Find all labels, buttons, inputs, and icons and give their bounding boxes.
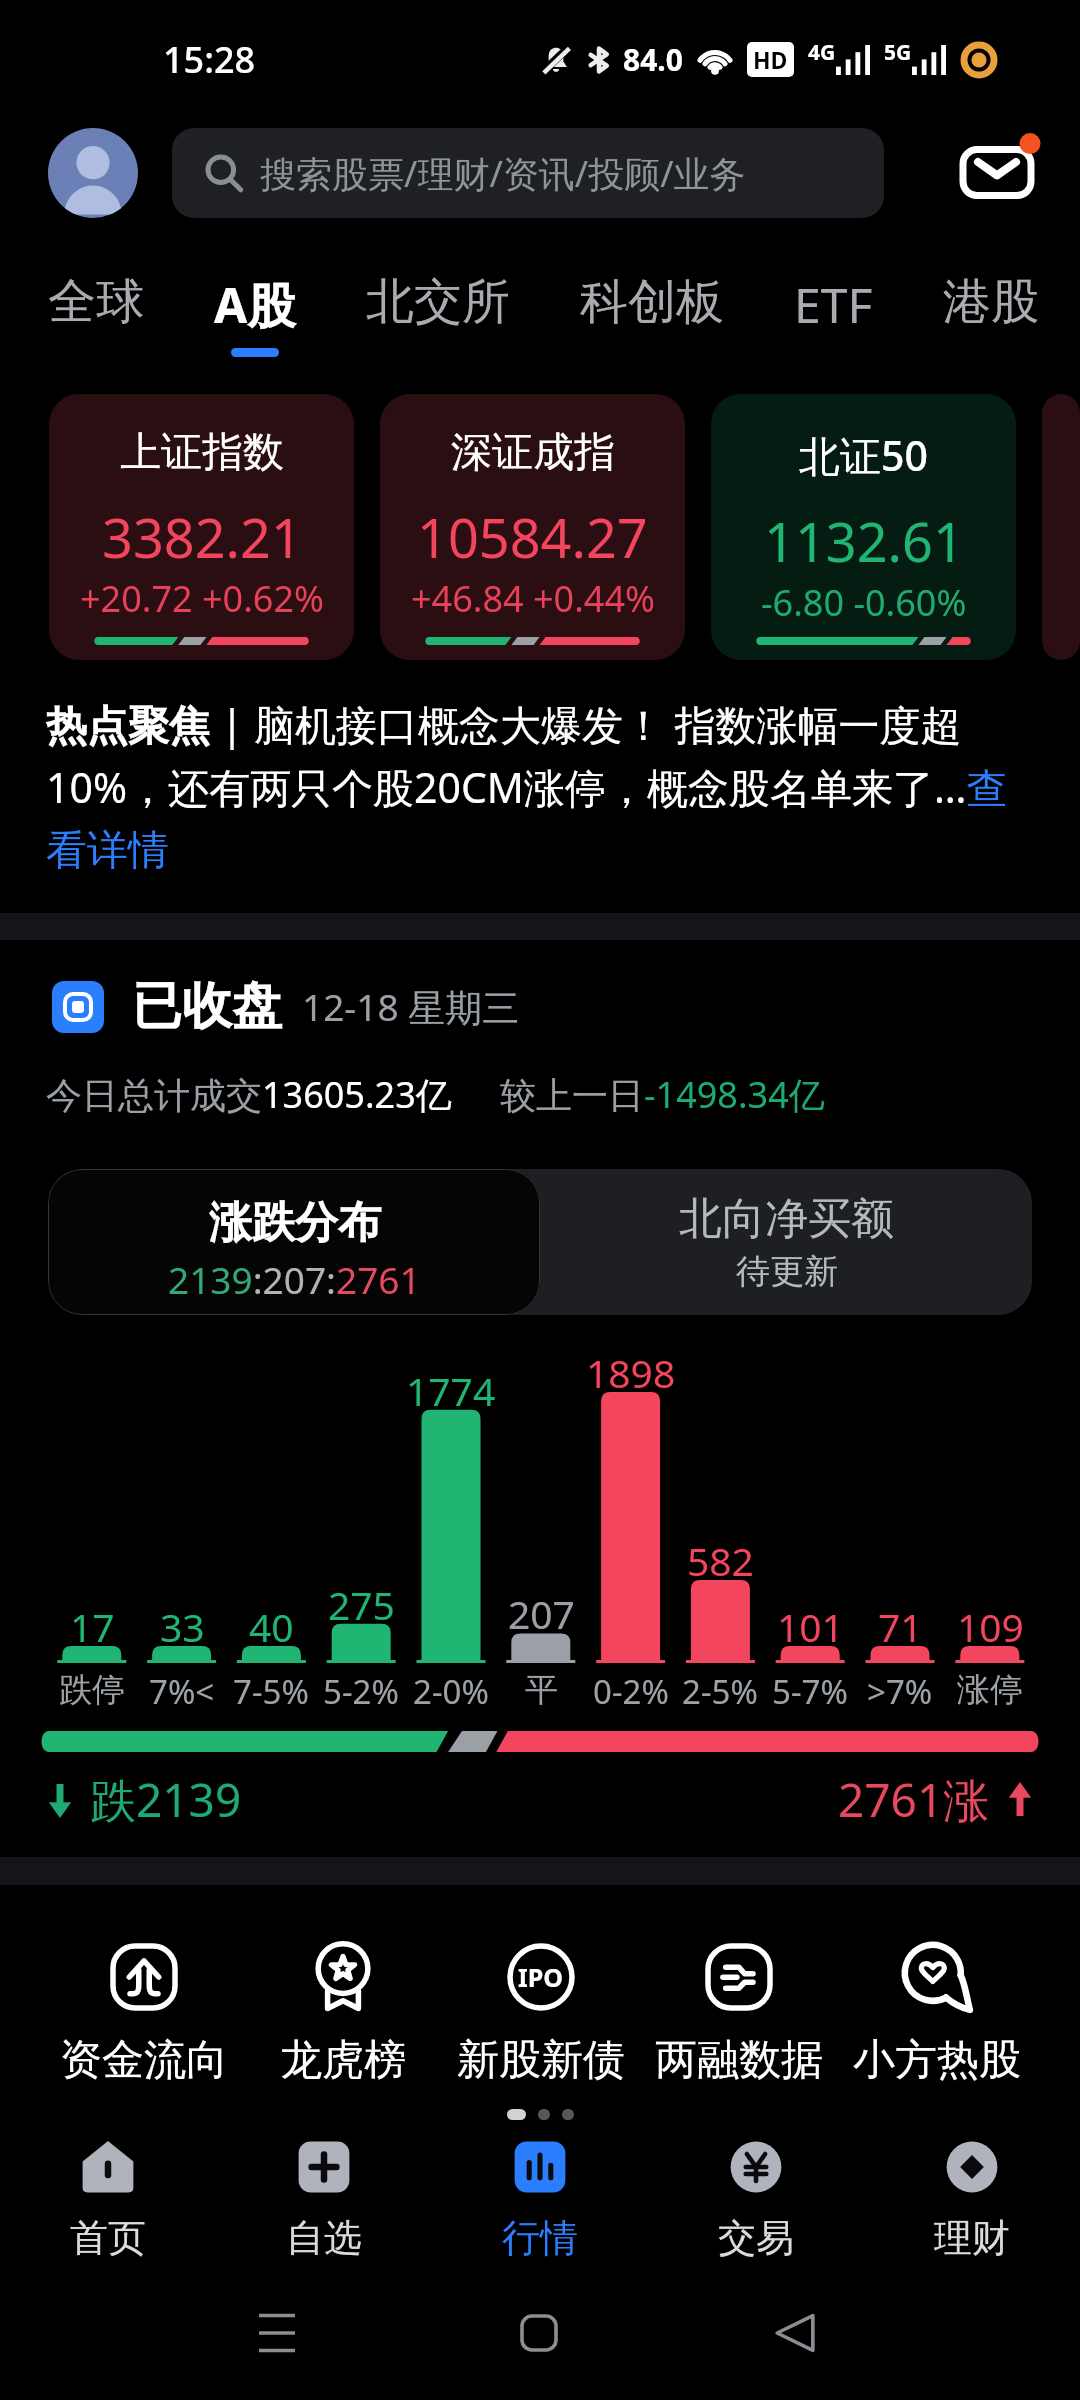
button[interactable]: 搜索股票/理财/资讯/投顾/业务 — [172, 128, 884, 218]
staticText: 33 — [160, 1600, 205, 1653]
staticText: 207 — [508, 1587, 575, 1640]
button[interactable]: 北交所 — [366, 272, 510, 351]
staticText: 0-2% — [593, 1669, 669, 1714]
button[interactable]: 涨跌分布 — [48, 1169, 540, 1315]
button[interactable]: Home — [504, 2298, 574, 2368]
button[interactable]: 两融数据 — [640, 1942, 838, 2087]
staticText: 首页 — [70, 2214, 146, 2262]
button[interactable]: 自选 — [216, 2140, 432, 2290]
staticText: 新股新债 — [457, 2034, 625, 2087]
staticText: 71 — [878, 1600, 923, 1653]
staticText: 今日总计成交13605.23亿 — [46, 1070, 452, 1119]
button[interactable]: Back — [760, 2298, 830, 2368]
staticText: 1132.61 — [764, 504, 964, 578]
button[interactable]: 小方热股 — [838, 1942, 1036, 2087]
button[interactable]: 龙虎榜 — [243, 1942, 442, 2087]
staticText: 5-2% — [323, 1669, 399, 1714]
staticText: 1774 — [406, 1364, 496, 1417]
staticText: -6.80 -0.60% — [761, 578, 967, 627]
staticText: 北证50 — [799, 427, 928, 483]
button[interactable]: IPO — [442, 1942, 640, 2087]
button[interactable]: 交易 — [648, 2140, 864, 2290]
staticText: 跌停 — [59, 1669, 125, 1711]
staticText: 275 — [328, 1578, 395, 1631]
staticText: 5-7% — [772, 1669, 848, 1714]
staticText: 5G — [884, 38, 912, 67]
staticText: 109 — [957, 1600, 1024, 1653]
staticText: 龙虎榜 — [280, 2034, 406, 2087]
button[interactable]: Recents — [242, 2298, 312, 2368]
staticText: >7% — [867, 1669, 933, 1714]
staticText: 北向净买额 — [679, 1192, 894, 1246]
staticText: 全球 — [48, 272, 144, 332]
staticText: 10584.27 — [417, 500, 648, 574]
button[interactable]: 行情 — [432, 2140, 648, 2290]
button[interactable]: 上证指数 — [49, 394, 354, 660]
staticText: 17 — [70, 1600, 115, 1653]
staticText: 行情 — [502, 2214, 578, 2262]
staticText: 40 — [249, 1600, 294, 1653]
staticText: 搜索股票/理财/资讯/投顾/业务 — [260, 149, 746, 198]
staticText: 港股 — [943, 272, 1039, 332]
staticText: 待更新 — [736, 1250, 838, 1293]
staticText: 上证指数 — [120, 427, 284, 479]
button[interactable]: 北向净买额 — [540, 1169, 1032, 1315]
staticText: 理财 — [934, 2214, 1010, 2262]
staticText: 1898 — [586, 1346, 676, 1399]
staticText: 4G — [808, 38, 836, 67]
staticText: ETF — [794, 272, 873, 337]
staticText: 深证成指 — [451, 427, 615, 479]
staticText: A股 — [214, 272, 296, 338]
staticText: 2139:207:2761 — [168, 1254, 421, 1304]
staticText: 自选 — [286, 2214, 362, 2262]
button[interactable]: A股 — [214, 272, 296, 357]
staticText: 跌2139 — [90, 1768, 242, 1831]
staticText: +46.84 +0.44% — [411, 574, 655, 623]
button[interactable]: ETF — [794, 272, 873, 356]
staticText: 7-5% — [233, 1669, 309, 1714]
staticText: 涨跌分布 — [209, 1196, 381, 1250]
staticText: 12-18 星期三 — [302, 981, 520, 1032]
staticText: 2-0% — [413, 1669, 489, 1714]
staticText: +20.72 +0.62% — [80, 574, 324, 623]
staticText: 15:28 — [163, 35, 256, 84]
button[interactable]: 全球 — [48, 272, 144, 351]
staticText: 两融数据 — [655, 2034, 823, 2087]
button[interactable]: 科创板 — [580, 272, 724, 351]
button[interactable]: 资金流向 — [44, 1942, 243, 2087]
staticText: 2761涨 — [838, 1768, 990, 1831]
staticText: 小方热股 — [853, 2034, 1021, 2087]
staticText: 3382.21 — [102, 500, 302, 574]
staticText: 热点聚焦 | 脑机接口概念大爆发！ 指数涨幅一度超10%，还有两只个股20CM涨… — [46, 696, 1040, 876]
button[interactable]: 首页 — [0, 2140, 216, 2290]
button[interactable]: 深证成指 — [380, 394, 685, 660]
staticText: HD — [753, 44, 788, 75]
button[interactable]: Profile — [48, 128, 138, 218]
staticText: 582 — [687, 1534, 754, 1587]
button[interactable]: 港股 — [943, 272, 1039, 351]
staticText: 资金流向 — [60, 2034, 228, 2087]
staticText: 7%< — [149, 1669, 215, 1714]
staticText: 北交所 — [366, 272, 510, 332]
staticText: 已收盘 — [132, 975, 282, 1038]
staticText: 较上一日-1498.34亿 — [500, 1070, 825, 1119]
button[interactable]: 热点聚焦 | 脑机接口概念大爆发！ 指数涨幅一度超10%，还有两只个股20CM涨… — [46, 696, 1040, 876]
button[interactable]: 理财 — [864, 2140, 1080, 2290]
staticText: 平 — [525, 1669, 558, 1711]
staticText: 涨停 — [957, 1669, 1023, 1711]
staticText: 101 — [777, 1600, 844, 1653]
staticText: 交易 — [718, 2214, 794, 2262]
staticText: 84.0 — [623, 39, 683, 80]
staticText: 2-5% — [682, 1669, 758, 1714]
staticText: IPO — [518, 1960, 564, 1994]
button[interactable]: Messages — [950, 122, 1050, 214]
staticText: 科创板 — [580, 272, 724, 332]
button[interactable]: 北证50 — [711, 394, 1016, 660]
